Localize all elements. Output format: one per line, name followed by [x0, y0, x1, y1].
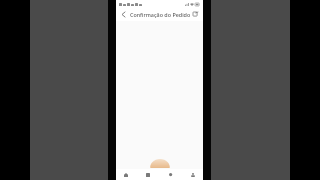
button[interactable]: Voltar [119, 10, 128, 19]
button[interactable]: Buscar [164, 169, 178, 180]
button[interactable]: Pedidos [141, 169, 155, 180]
button[interactable]: Início [119, 169, 133, 180]
staticText: Confirmação do Pedido [130, 11, 191, 18]
button[interactable]: Perfil [186, 169, 200, 180]
button[interactable]: Ajuda [191, 10, 200, 19]
